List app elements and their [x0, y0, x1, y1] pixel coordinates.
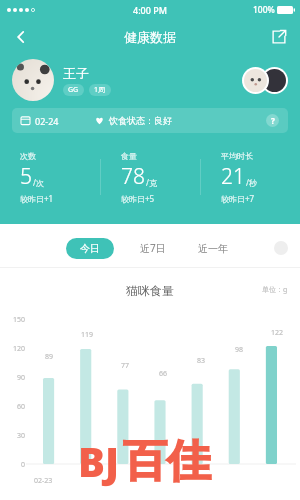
staticText: 近一年 [198, 242, 228, 255]
staticText: 健康数据 [124, 29, 176, 45]
button[interactable]: Back [5, 21, 37, 53]
staticText: 0 [20, 460, 25, 470]
staticText: /次 [33, 177, 44, 188]
button[interactable]: 近一年 [192, 238, 234, 259]
staticText: 02-24 [35, 115, 59, 127]
button[interactable]: 02-24 [12, 108, 288, 133]
button[interactable]: Family avatars [242, 65, 288, 95]
staticText: 119 [81, 330, 94, 340]
staticText: 90 [16, 373, 25, 383]
staticText: 89 [45, 352, 54, 362]
staticText: 30 [16, 431, 25, 441]
staticText: 120 [12, 344, 25, 354]
button[interactable]: Share [264, 22, 294, 52]
staticText: 猫咪食量 [126, 283, 174, 298]
staticText: 100% [253, 4, 275, 16]
staticText: GG [68, 85, 79, 95]
button[interactable]: More options [274, 241, 288, 255]
staticText: 150 [12, 315, 25, 325]
staticText: BJ [78, 434, 120, 488]
staticText: 5 [20, 162, 32, 191]
staticText: 较昨日+7 [221, 193, 255, 204]
staticText: 较昨日+5 [121, 193, 155, 204]
staticText: 次数 [20, 151, 36, 161]
button[interactable]: 今日 [66, 238, 114, 259]
staticText: 77 [121, 361, 130, 371]
staticText: 66 [159, 369, 168, 379]
staticText: 饮食状态：良好 [109, 115, 172, 126]
staticText: ? [271, 115, 275, 126]
staticText: 21 [221, 162, 245, 191]
staticText: 今日 [80, 242, 100, 255]
button[interactable]: Help [266, 114, 279, 127]
staticText: 83 [197, 356, 206, 366]
staticText: 较昨日+1 [20, 193, 54, 204]
staticText: 平均时长 [221, 151, 253, 161]
staticText: 122 [271, 328, 284, 338]
staticText: /秒 [246, 177, 257, 188]
staticText: 王子 [63, 65, 89, 81]
staticText: 近7日 [140, 241, 166, 255]
staticText: 02-23 [34, 476, 53, 486]
button[interactable]: 近7日 [134, 237, 172, 259]
staticText: 78 [121, 162, 145, 191]
staticText: 食量 [121, 151, 137, 161]
staticText: 60 [16, 402, 25, 412]
staticText: 98 [235, 345, 244, 355]
staticText: 1周 [94, 85, 106, 95]
staticText: 百佳 [123, 434, 211, 489]
staticText: 4:00 PM [133, 4, 167, 16]
staticText: 单位：g [262, 285, 288, 295]
button[interactable]: Pet avatar [12, 59, 54, 101]
staticText: /克 [146, 177, 157, 188]
